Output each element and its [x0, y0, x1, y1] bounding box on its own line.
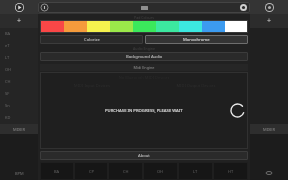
button[interactable]: Settings: [250, 0, 288, 14]
button[interactable]: Add track: [250, 14, 288, 28]
button[interactable]: Loop: [250, 166, 288, 180]
staticText: CH: [123, 169, 129, 174]
button[interactable]: Background Audio: [40, 52, 248, 61]
button[interactable]: eT: [0, 40, 38, 51]
button[interactable]: CH: [108, 162, 143, 180]
button[interactable]: Colour 4: [133, 20, 156, 33]
button[interactable]: Colour 8: [225, 20, 248, 33]
staticText: LT: [193, 169, 198, 174]
button[interactable]: Sn: [0, 100, 38, 111]
staticText: MIXER: [13, 127, 26, 132]
staticText: MIXER: [263, 127, 276, 132]
button[interactable]: Colour 6: [179, 20, 202, 33]
button[interactable]: HT: [213, 162, 248, 180]
staticText: OH: [5, 67, 12, 72]
button[interactable]: Play: [0, 0, 38, 14]
staticText: BPM: [15, 171, 24, 176]
staticText: Monochrome: [183, 37, 210, 43]
button[interactable]: [38, 2, 250, 13]
button[interactable]: MIXER: [0, 124, 38, 134]
button[interactable]: LT: [0, 52, 38, 63]
button[interactable]: Monochrome: [145, 35, 248, 44]
staticText: Midi Engine: [40, 65, 248, 70]
button[interactable]: Colour 1: [64, 20, 87, 33]
staticText: BA: [54, 169, 60, 174]
button[interactable]: CH: [0, 76, 38, 87]
button[interactable]: Colorize: [40, 35, 143, 44]
staticText: Colorize: [84, 37, 100, 43]
button[interactable]: About: [40, 151, 248, 160]
button[interactable]: Add: [0, 14, 38, 28]
staticText: Sn: [5, 103, 10, 108]
staticText: CP: [89, 169, 94, 174]
staticText: LT: [5, 55, 10, 60]
button[interactable]: SF: [0, 88, 38, 99]
staticText: SF: [5, 91, 10, 96]
button[interactable]: MIXER: [250, 124, 288, 134]
button[interactable]: Colour 7: [202, 20, 225, 33]
button[interactable]: LT: [178, 162, 213, 180]
button[interactable]: Colour 5: [156, 20, 179, 33]
button[interactable]: Colour 2: [87, 20, 110, 33]
staticText: eT: [5, 43, 10, 48]
button[interactable]: KD: [0, 112, 38, 123]
staticText: HT: [228, 169, 234, 174]
staticText: +: [17, 16, 22, 26]
staticText: BA: [5, 31, 11, 36]
button[interactable]: OH: [0, 64, 38, 75]
staticText: OH: [157, 169, 164, 174]
button[interactable]: CP: [74, 162, 108, 180]
staticText: PURCHASE IN PROGRESS, PLEASE WAIT: [105, 108, 183, 114]
button[interactable]: Colour 0: [40, 20, 64, 33]
staticText: About: [138, 153, 150, 159]
button[interactable]: BA: [40, 162, 74, 180]
staticText: Background Audio: [126, 54, 163, 60]
staticText: +: [267, 16, 272, 26]
button[interactable]: BPM: [0, 166, 38, 180]
button[interactable]: OH: [143, 162, 178, 180]
staticText: KD: [5, 115, 11, 120]
button[interactable]: BA: [0, 28, 38, 39]
staticText: CH: [5, 79, 11, 84]
button[interactable]: Colour 3: [110, 20, 133, 33]
